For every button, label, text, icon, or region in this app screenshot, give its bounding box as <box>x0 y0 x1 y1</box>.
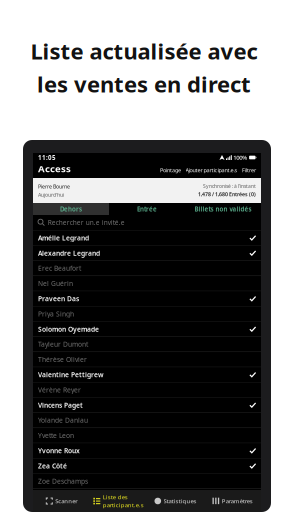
staticText: Yvonne Roux <box>38 446 80 455</box>
button[interactable]: Nel Guérin <box>33 276 261 291</box>
button[interactable]: Valentine Pettigrew <box>33 367 261 382</box>
staticText: Thérèse Olivier <box>38 355 87 364</box>
button[interactable]: Vincens Paget <box>33 398 261 413</box>
button[interactable]: Priya Singh <box>33 306 261 322</box>
staticText: Priya Singh <box>38 309 74 318</box>
button[interactable]: Vérène Reyer <box>33 382 261 398</box>
staticText: Valentine Pettigrew <box>38 370 104 379</box>
staticText: Solomon Oyemade <box>38 324 99 334</box>
button[interactable]: Filtrer <box>242 166 256 174</box>
button[interactable]: Pointage <box>160 166 181 174</box>
staticText: Entrée <box>137 205 157 213</box>
button[interactable]: Statistiques <box>147 490 204 512</box>
button[interactable]: Thérèse Olivier <box>33 352 261 367</box>
staticText: 11:05 <box>38 153 56 162</box>
button[interactable]: Billets non validés <box>185 203 261 215</box>
staticText: Pointage <box>160 166 181 174</box>
staticText: les ventes en direct <box>37 69 251 99</box>
staticText: Alexandre Legrand <box>38 248 100 258</box>
staticText: Tayleur Dumont <box>38 340 88 349</box>
button[interactable]: Liste des participant.e.s <box>90 490 147 512</box>
staticText: Yvette Leon <box>38 431 74 440</box>
button[interactable]: Rechercher un.e invité.e <box>33 215 261 230</box>
button[interactable]: Ajouter participant.e.s <box>185 166 237 174</box>
staticText: Liste actualisée avec <box>30 36 257 66</box>
button[interactable]: Zea Côté <box>33 458 261 474</box>
button[interactable]: Entrée <box>109 203 185 215</box>
button[interactable]: Scanner <box>33 490 90 512</box>
button[interactable]: Praveen Das <box>33 291 261 306</box>
button[interactable]: Alexandre Legrand <box>33 246 261 261</box>
staticText: Paramètres <box>222 497 253 505</box>
staticText: Access <box>38 162 71 175</box>
button[interactable]: Yolande Danlau <box>33 413 261 428</box>
staticText: Nel Guérin <box>38 279 73 288</box>
staticText: Ajouter participant.e.s <box>185 166 237 174</box>
button[interactable]: Yvette Leon <box>33 428 261 443</box>
staticText: 1,478 / 1,680 Entrées (0) <box>198 191 256 198</box>
staticText: Vincens Paget <box>38 400 83 410</box>
staticText: Praveen Das <box>38 294 79 303</box>
staticText: Zea Côté <box>38 461 67 470</box>
staticText: Billets non validés <box>194 205 251 213</box>
button[interactable]: Paramètres <box>204 490 261 512</box>
button[interactable]: Tayleur Dumont <box>33 337 261 352</box>
button[interactable]: Dehors <box>33 203 109 215</box>
staticText: Liste des participant.e.s <box>103 493 144 509</box>
staticText: 100% <box>233 153 247 161</box>
staticText: Yolande Danlau <box>38 416 88 425</box>
staticText: Statistiques <box>163 497 196 505</box>
button[interactable]: Amélie Legrand <box>33 230 261 246</box>
staticText: Synchronisé : à l'instant <box>203 183 256 189</box>
staticText: Rechercher un.e invité.e <box>48 218 125 227</box>
staticText: Pierre Bourne <box>38 183 70 190</box>
button[interactable]: Zoe Deschamps <box>33 474 261 489</box>
staticText: Amélie Legrand <box>38 233 89 242</box>
button[interactable]: Solomon Oyemade <box>33 322 261 337</box>
button[interactable]: Yvonne Roux <box>33 443 261 458</box>
staticText: Filtrer <box>242 166 256 174</box>
staticText: Aujourd'hui <box>38 191 64 198</box>
staticText: Vérène Reyer <box>38 385 81 394</box>
staticText: Zoe Deschamps <box>38 476 88 486</box>
staticText: Erec Beaufort <box>38 264 81 273</box>
staticText: Scanner <box>55 497 77 505</box>
staticText: Dehors <box>60 205 82 213</box>
button[interactable]: Erec Beaufort <box>33 261 261 276</box>
